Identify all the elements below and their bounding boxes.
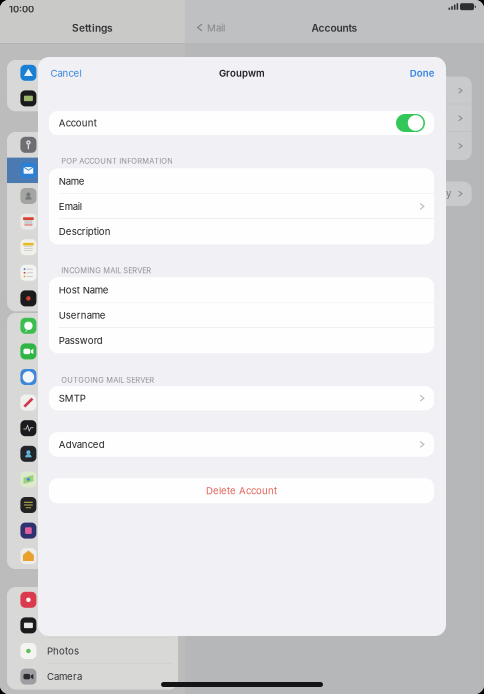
staticText: Username: [59, 309, 106, 321]
button[interactable]: Messages: [7, 313, 178, 339]
button[interactable]: [211, 132, 471, 160]
button[interactable]: Weekly: [211, 182, 471, 206]
button[interactable]: Reminders: [7, 260, 178, 286]
button[interactable]: FaceTime: [7, 339, 178, 364]
staticText: Photos: [47, 645, 79, 657]
staticText: News: [47, 397, 72, 408]
button[interactable]: TV: [7, 613, 178, 638]
staticText: Translate: [47, 499, 89, 511]
staticText: Weekly: [418, 188, 451, 199]
button[interactable]: [396, 114, 425, 132]
button[interactable]: Notes: [7, 234, 178, 260]
staticText: Mail: [47, 165, 65, 176]
staticText: Email: [59, 201, 82, 212]
staticText: Groupwm: [219, 67, 265, 79]
staticText: Reminders: [47, 267, 96, 279]
button[interactable]: Safari: [7, 364, 178, 390]
button[interactable]: Calendar: [7, 209, 178, 234]
button[interactable]: Done: [399, 62, 439, 84]
button[interactable]: Home: [7, 543, 178, 569]
staticText: Delete Account: [206, 485, 277, 497]
button[interactable]: Host Name: [49, 277, 434, 303]
staticText: Contacts: [47, 190, 87, 202]
staticText: Maps: [47, 474, 72, 485]
button[interactable]: Mail: [189, 16, 241, 38]
staticText: Stocks: [47, 422, 77, 434]
staticText: Cancel: [50, 67, 81, 79]
staticText: FaceTime: [47, 346, 89, 357]
button[interactable]: News: [7, 390, 178, 415]
button[interactable]: Username: [49, 303, 434, 328]
staticText: App Store: [47, 67, 93, 79]
staticText: Done: [410, 67, 435, 79]
button[interactable]: Contacts: [7, 183, 178, 209]
button[interactable]: Name: [49, 169, 434, 194]
button[interactable]: Translate: [7, 492, 178, 518]
button[interactable]: Camera: [7, 664, 178, 689]
button[interactable]: Cancel: [46, 62, 92, 84]
button[interactable]: Freeform: [7, 286, 178, 311]
staticText: INCOMING MAIL SERVER: [61, 266, 151, 275]
button[interactable]: Delete Account: [49, 478, 434, 503]
button[interactable]: Mail: [7, 158, 178, 183]
staticText: Account: [59, 117, 97, 129]
staticText: Calendar: [47, 216, 88, 227]
staticText: Notes: [47, 241, 74, 253]
button[interactable]: Shortcuts: [7, 518, 178, 543]
button[interactable]: Weather: [7, 441, 178, 467]
staticText: 10:00: [9, 3, 34, 15]
staticText: SMTP: [59, 392, 86, 404]
staticText: Mail: [207, 22, 225, 34]
button[interactable]: Password: [49, 328, 434, 353]
button[interactable]: Advanced: [49, 432, 434, 456]
button[interactable]: Wallet: [7, 86, 178, 111]
staticText: Advanced: [59, 439, 105, 450]
button[interactable]: [211, 77, 471, 104]
button[interactable]: Description: [49, 219, 434, 244]
button[interactable]: SMTP: [49, 386, 434, 410]
button[interactable]: Maps: [7, 467, 178, 492]
staticText: Description: [59, 226, 111, 237]
staticText: Name: [59, 175, 85, 187]
staticText: Settings: [72, 22, 113, 34]
staticText: Host Name: [59, 284, 109, 296]
staticText: Freeform: [47, 293, 88, 304]
staticText: OUTGOING MAIL SERVER: [61, 375, 154, 384]
staticText: Messages: [47, 320, 94, 332]
button[interactable]: Email: [49, 194, 434, 219]
staticText: Weather: [47, 448, 86, 460]
button[interactable]: Passwords: [7, 132, 178, 158]
staticText: Camera: [47, 671, 82, 682]
staticText: Safari: [47, 371, 72, 383]
staticText: Accounts: [311, 22, 357, 34]
staticText: POP ACCOUNT INFORMATION: [61, 156, 173, 165]
button[interactable]: Stocks: [7, 415, 178, 441]
button[interactable]: Music: [7, 587, 178, 613]
button[interactable]: Photos: [7, 638, 178, 664]
staticText: Password: [59, 335, 103, 346]
button[interactable]: App Store: [7, 60, 178, 86]
button[interactable]: [211, 104, 471, 132]
